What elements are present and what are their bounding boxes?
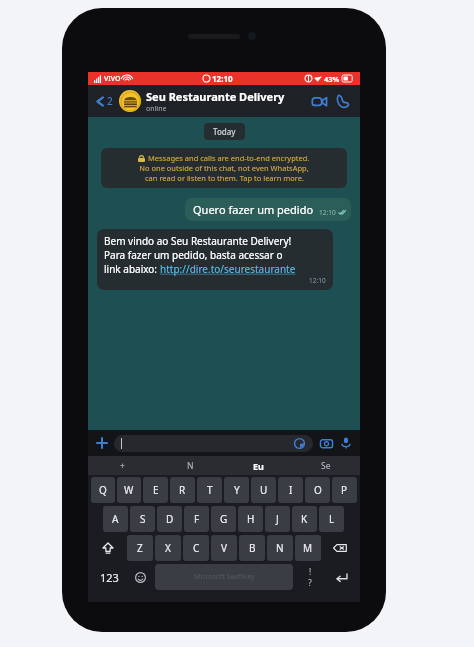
staticText: Para fazer um pedido, basta acessar o	[104, 248, 283, 262]
staticText: Today	[213, 126, 236, 137]
staticText: C	[193, 541, 200, 555]
staticText: N	[187, 460, 194, 472]
button[interactable]: R	[170, 477, 195, 503]
staticText: J	[276, 512, 279, 526]
button[interactable]: Sticker	[114, 435, 313, 452]
button[interactable]: Shift	[90, 535, 126, 561]
staticText: U	[260, 483, 268, 497]
staticText: http://dire.to/seurestaurante	[160, 262, 296, 276]
staticText: Q	[99, 483, 107, 497]
button[interactable]: Voice message	[336, 433, 356, 453]
button[interactable]: T	[197, 477, 222, 503]
button[interactable]: H	[238, 506, 263, 532]
button[interactable]: E	[143, 477, 168, 503]
staticText: B	[249, 541, 256, 555]
staticText: Z	[137, 541, 143, 555]
button[interactable]: 123	[90, 564, 128, 590]
button[interactable]: Sticker	[293, 437, 306, 450]
button[interactable]: I	[278, 477, 303, 503]
staticText: 12:10	[212, 73, 233, 84]
staticText: H	[247, 512, 255, 526]
button[interactable]: Bem vindo ao Seu Restaurante Delivery!	[97, 229, 333, 290]
staticText: M	[303, 541, 313, 555]
staticText: 43%	[324, 74, 340, 84]
button[interactable]: A	[103, 506, 128, 532]
button[interactable]: Voice call	[331, 89, 355, 113]
staticText: D	[166, 512, 174, 526]
staticText: online	[146, 104, 167, 114]
button[interactable]: B	[239, 535, 265, 561]
staticText: R	[179, 483, 186, 497]
button[interactable]: K	[292, 506, 317, 532]
button[interactable]: Y	[224, 477, 249, 503]
staticText: 123	[100, 570, 119, 585]
button[interactable]: V	[211, 535, 237, 561]
staticText: S	[140, 512, 146, 526]
button[interactable]: Eu	[224, 456, 292, 475]
button[interactable]: O	[305, 477, 330, 503]
button[interactable]: Z	[127, 535, 153, 561]
staticText: L	[329, 512, 335, 526]
button[interactable]: Profile photo	[119, 90, 141, 112]
button[interactable]: J	[265, 506, 290, 532]
button[interactable]: L	[319, 506, 344, 532]
button[interactable]: X	[155, 535, 181, 561]
staticText: K	[301, 512, 308, 526]
button[interactable]: Quero fazer um pedido	[185, 198, 351, 221]
button[interactable]: Se	[292, 456, 360, 475]
staticText: N	[276, 541, 284, 555]
staticText: 12:10	[309, 276, 326, 285]
button[interactable]: D	[157, 506, 182, 532]
staticText: E	[153, 483, 159, 497]
staticText: W	[124, 483, 134, 497]
button[interactable]: Enter	[325, 564, 358, 590]
button[interactable]: Attach	[92, 433, 112, 453]
staticText: I	[289, 483, 293, 497]
button[interactable]: N	[156, 456, 224, 475]
staticText: ! ?	[308, 566, 312, 588]
button[interactable]: Backspace	[322, 535, 358, 561]
staticText: 2	[107, 94, 113, 108]
button[interactable]: Space	[155, 564, 293, 590]
staticText: Seu Restaurante Delivery	[146, 89, 285, 104]
button[interactable]: Back	[93, 94, 115, 108]
staticText: No one outside of this chat, not even Wh…	[139, 163, 309, 173]
button[interactable]: S	[130, 506, 155, 532]
button[interactable]: Seu Restaurante Delivery	[146, 89, 307, 114]
staticText: O	[314, 483, 322, 497]
button[interactable]: G	[211, 506, 236, 532]
staticText: Eu	[253, 460, 264, 472]
staticText: X	[165, 541, 171, 555]
staticText: V	[221, 541, 227, 555]
button[interactable]: P	[332, 477, 357, 503]
staticText: +	[120, 460, 125, 472]
staticText: Bem vindo ao Seu Restaurante Delivery!	[104, 234, 292, 248]
staticText: F	[194, 512, 200, 526]
button[interactable]: Camera	[316, 433, 336, 453]
button[interactable]: C	[183, 535, 209, 561]
button[interactable]: Q	[91, 477, 115, 503]
button[interactable]: Messages and calls are end-to-end encryp…	[101, 148, 347, 188]
button[interactable]: W	[117, 477, 141, 503]
staticText: A	[112, 512, 119, 526]
staticText: T	[207, 483, 213, 497]
staticText: link abaixo:	[104, 262, 160, 276]
button[interactable]: Video call	[307, 89, 331, 113]
staticText: Y	[234, 483, 240, 497]
staticText: G	[220, 512, 228, 526]
staticText: P	[341, 483, 348, 497]
staticText: VIVO	[104, 74, 121, 84]
button[interactable]: ! ?	[295, 564, 325, 590]
button[interactable]: M	[295, 535, 321, 561]
button[interactable]: U	[251, 477, 276, 503]
button[interactable]: F	[184, 506, 209, 532]
staticText: Quero fazer um pedido	[193, 202, 314, 217]
staticText: Se	[321, 460, 331, 472]
button[interactable]: N	[267, 535, 293, 561]
button[interactable]: +	[88, 456, 156, 475]
staticText: 12:10	[319, 208, 336, 217]
staticText: Messages and calls are end-to-end encryp…	[148, 153, 310, 163]
staticText: can read or listen to them. Tap to learn…	[145, 173, 304, 183]
button[interactable]: Emoji	[128, 564, 153, 590]
staticText: Microsoft SwiftKey	[194, 572, 255, 582]
